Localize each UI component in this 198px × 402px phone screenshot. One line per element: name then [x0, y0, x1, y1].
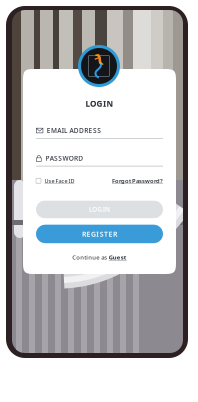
- button[interactable]: Continue as: [72, 253, 127, 261]
- staticText: Forgot Password?: [112, 177, 163, 185]
- staticText: Use Face ID: [44, 177, 74, 184]
- staticText: REGISTER: [82, 229, 117, 239]
- staticText: EMAIL ADDRESS: [47, 126, 101, 135]
- button[interactable]: Forgot Password?: [112, 177, 163, 185]
- staticText: LOGIN: [89, 205, 110, 214]
- staticText: Guest: [109, 253, 127, 261]
- button[interactable]: Use Face ID: [36, 177, 74, 184]
- staticText: LOGIN: [85, 98, 114, 109]
- button[interactable]: REGISTER: [36, 225, 163, 243]
- staticText: PASSWORD: [45, 154, 83, 163]
- staticText: Continue as: [72, 253, 107, 261]
- button[interactable]: LOGIN: [36, 201, 163, 218]
